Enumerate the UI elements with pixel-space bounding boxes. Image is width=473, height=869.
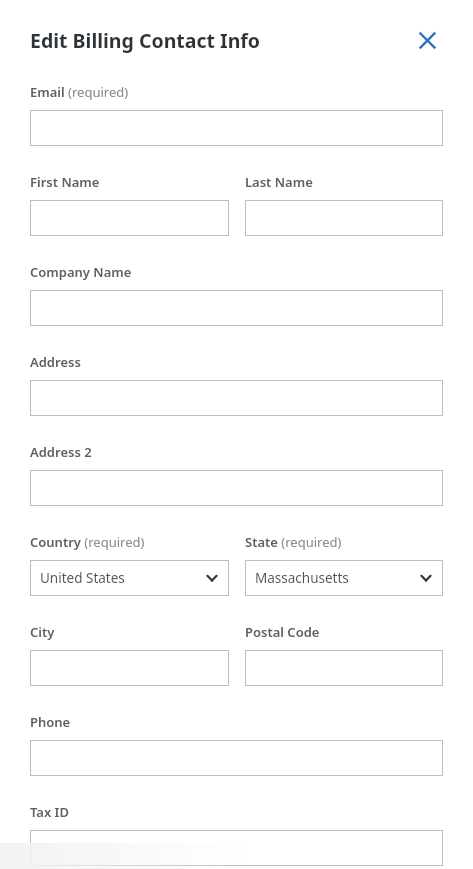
staticText: Country (required): [30, 533, 145, 551]
button[interactable]: [30, 110, 443, 146]
button[interactable]: [30, 470, 443, 506]
staticText: First Name: [30, 173, 100, 191]
staticText: Edit Billing Contact Info: [30, 27, 411, 54]
button[interactable]: [30, 290, 443, 326]
staticText: State (required): [245, 533, 342, 551]
staticText: Address 2: [30, 443, 92, 461]
button[interactable]: [30, 740, 443, 776]
button[interactable]: [245, 650, 443, 686]
button[interactable]: [30, 830, 443, 866]
staticText: Email (required): [30, 83, 129, 101]
staticText: United States: [40, 569, 205, 587]
staticText: Last Name: [245, 173, 313, 191]
staticText: City: [30, 623, 55, 641]
button[interactable]: [30, 380, 443, 416]
staticText: Address: [30, 353, 81, 371]
button[interactable]: Close: [411, 24, 443, 56]
staticText: Massachusetts: [255, 569, 419, 587]
button[interactable]: Massachusetts: [245, 560, 443, 596]
button[interactable]: [30, 650, 229, 686]
staticText: Postal Code: [245, 623, 320, 641]
staticText: Company Name: [30, 263, 132, 281]
staticText: Tax ID: [30, 803, 69, 821]
button[interactable]: [245, 200, 443, 236]
button[interactable]: [30, 200, 229, 236]
staticText: Phone: [30, 713, 71, 731]
button[interactable]: United States: [30, 560, 229, 596]
